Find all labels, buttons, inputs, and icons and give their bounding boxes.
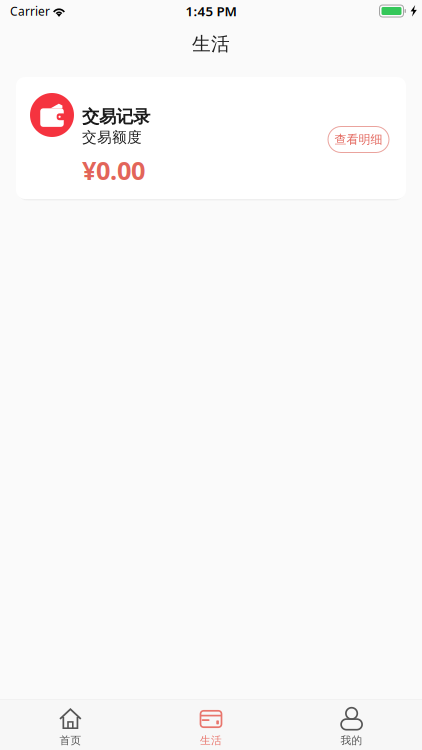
button[interactable]: 首页 bbox=[0, 700, 141, 750]
button[interactable]: 我的 bbox=[281, 700, 422, 750]
button[interactable]: 查看明细 bbox=[328, 126, 389, 152]
staticText: 我的 bbox=[341, 734, 363, 747]
staticText: 1:45 PM bbox=[185, 2, 236, 20]
staticText: 首页 bbox=[59, 734, 81, 747]
staticText: 交易记录 bbox=[82, 106, 150, 127]
staticText: 查看明细 bbox=[334, 132, 382, 147]
staticText: Carrier bbox=[10, 3, 50, 19]
staticText: 生活 bbox=[200, 734, 222, 747]
button[interactable]: 生活 bbox=[141, 700, 281, 750]
staticText: 交易额度 bbox=[82, 128, 142, 146]
staticText: 生活 bbox=[192, 32, 230, 55]
staticText: ¥0.00 bbox=[82, 153, 145, 187]
